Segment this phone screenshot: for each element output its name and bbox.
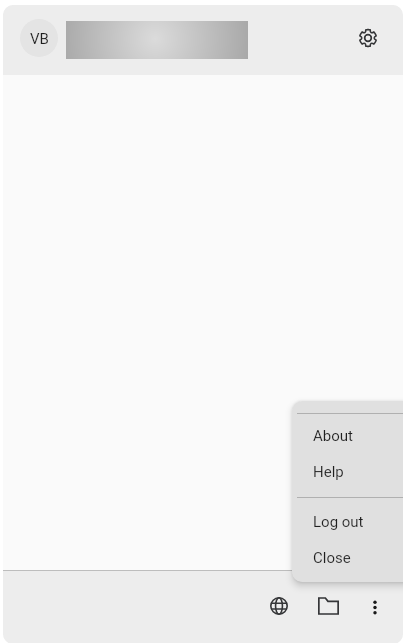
- button[interactable]: Browser: [257, 584, 301, 628]
- staticText: VB: [30, 30, 49, 48]
- button[interactable]: Help: [292, 454, 403, 490]
- button[interactable]: Files: [306, 584, 350, 628]
- button[interactable]: Log out: [292, 504, 403, 540]
- button[interactable]: About: [292, 418, 403, 454]
- button[interactable]: Settings: [349, 19, 387, 57]
- button[interactable]: Close: [292, 540, 403, 576]
- button[interactable]: VB: [20, 19, 58, 57]
- staticText: About: [313, 427, 353, 445]
- staticText: Close: [313, 549, 351, 567]
- button[interactable]: More options: [353, 584, 397, 628]
- staticText: Help: [313, 463, 344, 481]
- staticText: Log out: [313, 513, 364, 531]
